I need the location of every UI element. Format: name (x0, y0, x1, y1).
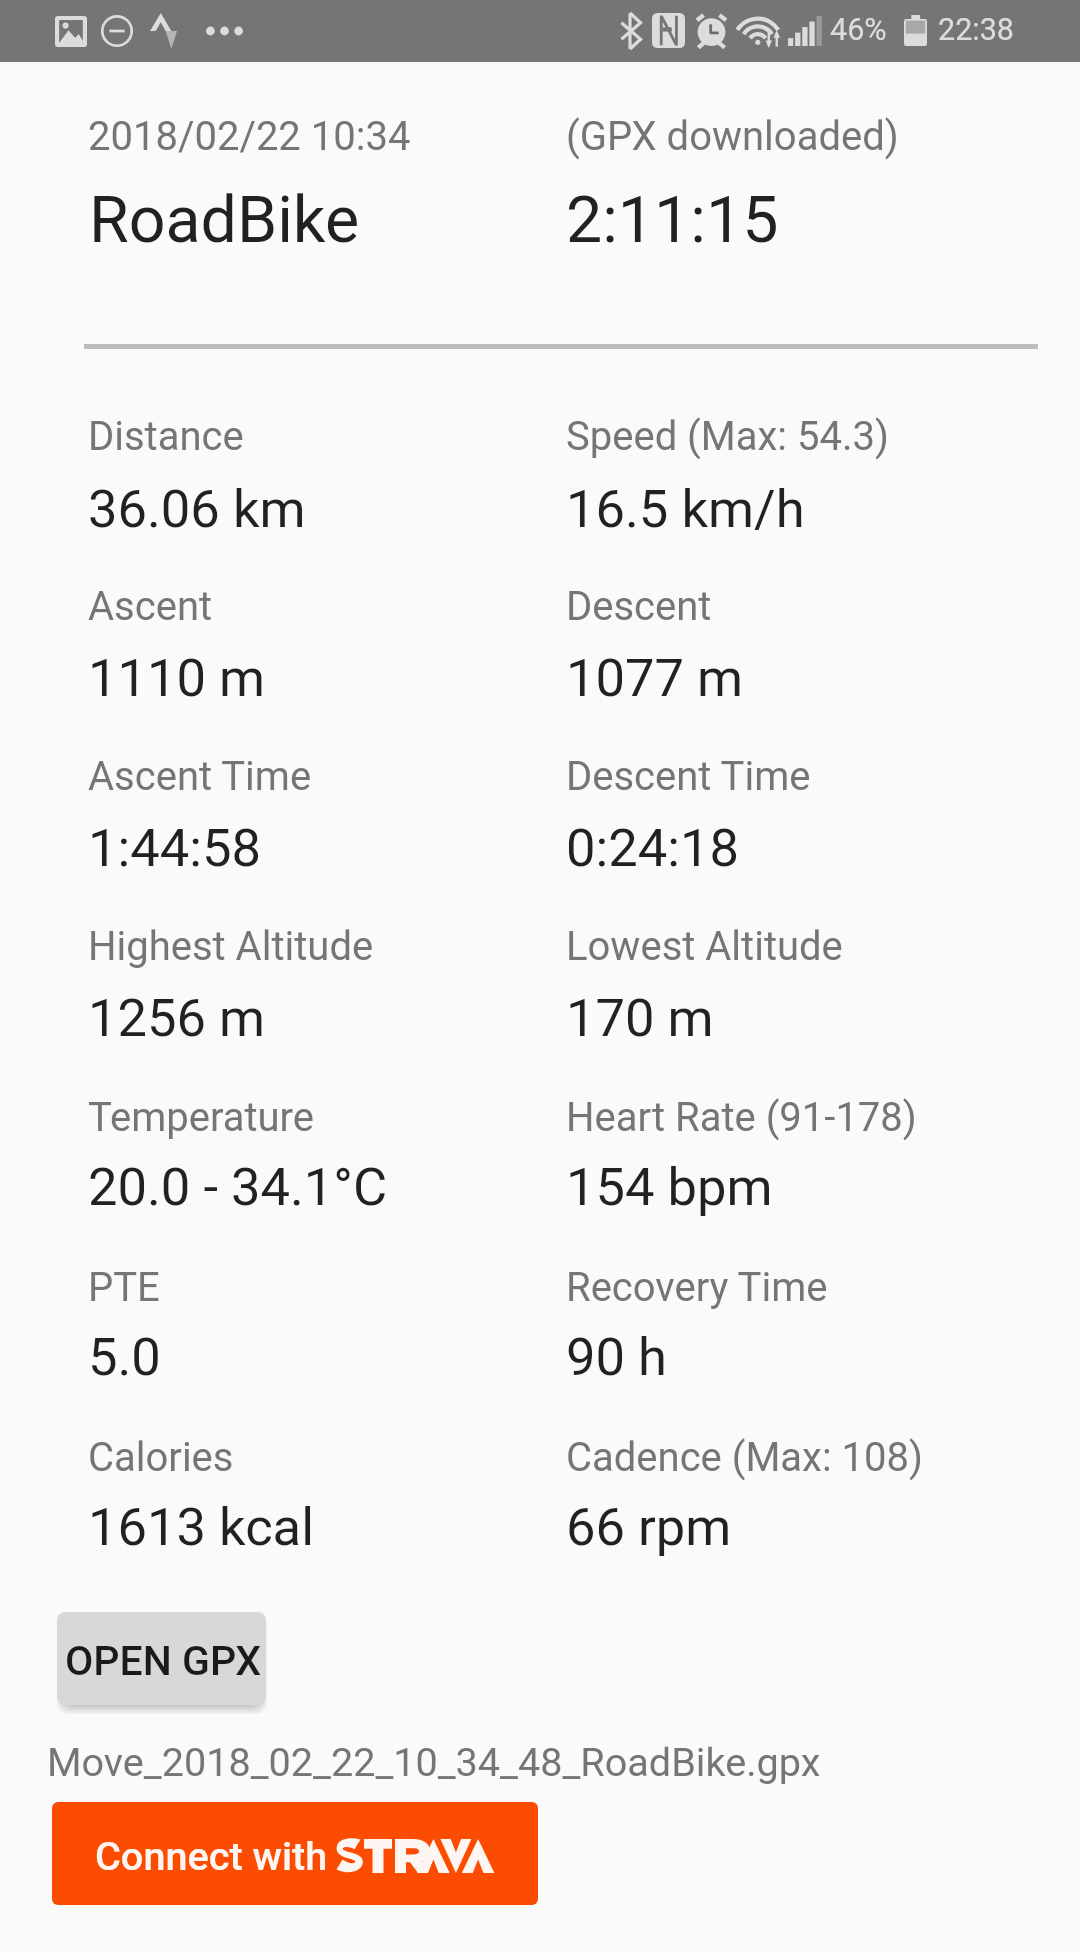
staticText: Lowest Altitude (566, 923, 843, 970)
staticText: RoadBike (89, 182, 360, 258)
staticText: Distance (88, 413, 244, 460)
staticText: 46% (830, 12, 887, 48)
staticText: 22:38 (938, 12, 1014, 48)
staticText: Descent Time (566, 753, 811, 800)
staticText: Heart Rate (91-178) (566, 1094, 917, 1141)
staticText: 66 rpm (566, 1496, 732, 1558)
staticText: 2018/02/22 10:34 (88, 113, 411, 160)
staticText: 154 bpm (566, 1156, 773, 1218)
other: Do not disturb (101, 15, 133, 47)
button[interactable]: OPEN GPX (57, 1612, 266, 1705)
staticText: Cadence (Max: 108) (566, 1434, 923, 1481)
staticText: Move_2018_02_22_10_34_48_RoadBike.gpx (47, 1739, 821, 1785)
staticText: 2:11:15 (566, 182, 779, 258)
staticText: 90 h (566, 1326, 667, 1388)
staticText: 1077 m (566, 647, 744, 709)
staticText: 1110 m (88, 647, 266, 709)
other: Screenshot (55, 16, 87, 47)
staticText: Recovery Time (566, 1264, 828, 1311)
staticText: Ascent (88, 583, 213, 630)
button[interactable]: Connect with (52, 1802, 538, 1905)
staticText: OPEN GPX (65, 1637, 262, 1685)
staticText: 1613 kcal (88, 1496, 314, 1558)
button[interactable]: Move_2018_02_22_10_34_48_RoadBike.gpx (47, 1736, 837, 1792)
staticText: 1:44:58 (88, 817, 261, 879)
staticText: Ascent Time (88, 753, 312, 800)
staticText: Descent (566, 583, 712, 630)
staticText: 170 m (566, 987, 714, 1049)
staticText: 20.0 - 34.1°C (88, 1156, 388, 1218)
staticText: Speed (Max: 54.3) (566, 413, 889, 460)
staticText: Calories (88, 1434, 234, 1481)
staticText: Highest Altitude (88, 923, 374, 970)
staticText: Temperature (88, 1094, 314, 1141)
staticText: 1256 m (88, 987, 266, 1049)
staticText: Connect with (95, 1833, 328, 1879)
staticText: 0:24:18 (566, 817, 739, 879)
staticText: 5.0 (88, 1326, 161, 1388)
staticText: 16.5 km/h (566, 478, 805, 540)
staticText: (GPX downloaded) (566, 113, 899, 160)
staticText: PTE (88, 1264, 160, 1311)
other: Strava (150, 13, 177, 49)
staticText: 36.06 km (88, 478, 306, 540)
